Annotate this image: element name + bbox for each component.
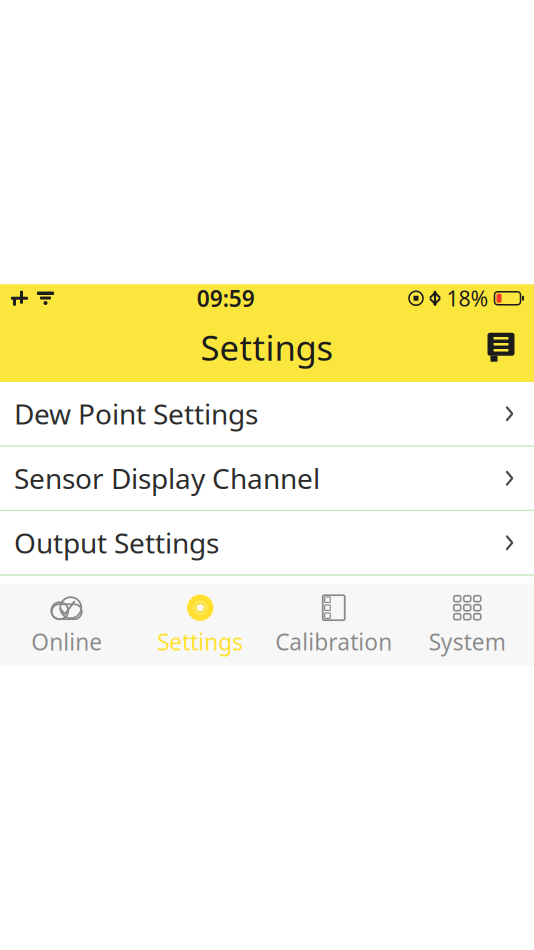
staticText: 09:59: [197, 283, 255, 313]
staticText: Settings: [200, 324, 333, 370]
button[interactable]: Settings: [133, 584, 267, 666]
staticText: Settings: [157, 627, 243, 657]
button[interactable]: Messages: [476, 324, 526, 370]
button[interactable]: Dew Point Settings: [0, 382, 534, 447]
staticText: Output Settings: [14, 524, 219, 561]
staticText: Dew Point Settings: [14, 395, 258, 432]
staticText: Calibration: [275, 627, 392, 657]
button[interactable]: Output Settings: [0, 511, 534, 576]
staticText: Sensor Display Channel: [14, 460, 320, 497]
staticText: Online: [31, 627, 102, 657]
staticText: 18%: [446, 284, 488, 312]
staticText: System: [429, 627, 506, 657]
button[interactable]: Sensor Display Channel: [0, 447, 534, 511]
button[interactable]: Online: [0, 584, 133, 666]
button[interactable]: Calibration: [267, 584, 400, 666]
button[interactable]: System: [400, 584, 534, 666]
